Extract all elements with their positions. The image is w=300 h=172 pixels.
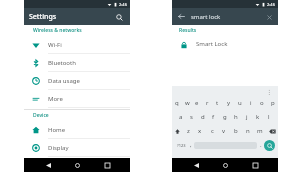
staticText: Device xyxy=(33,112,49,119)
button[interactable]: Home xyxy=(219,159,231,171)
button[interactable]: r xyxy=(202,96,212,110)
button[interactable]: Recents xyxy=(101,159,113,171)
button[interactable]: Wi-Fi xyxy=(24,36,130,54)
button[interactable]: l xyxy=(263,110,274,124)
button[interactable]: Search xyxy=(264,140,275,151)
button[interactable]: Home xyxy=(24,121,130,139)
staticText: Bluetooth xyxy=(48,59,76,67)
button[interactable]: q xyxy=(172,96,182,110)
button[interactable]: Back xyxy=(42,159,54,171)
staticText: l xyxy=(268,113,270,121)
staticText: ?123 xyxy=(177,143,186,148)
button[interactable]: y xyxy=(223,96,234,110)
staticText: ⋮ xyxy=(266,88,272,95)
staticText: p xyxy=(271,99,275,107)
staticText: x xyxy=(198,127,202,135)
button[interactable]: n xyxy=(242,124,254,138)
staticText: g xyxy=(223,113,227,121)
button[interactable]: Smart Lock xyxy=(172,36,278,52)
staticText: c xyxy=(211,127,214,135)
button[interactable]: x xyxy=(194,124,206,138)
staticText: 2:46 xyxy=(119,2,127,7)
staticText: Settings xyxy=(29,12,57,22)
button[interactable]: s xyxy=(186,110,197,124)
staticText: smart lock xyxy=(191,13,221,21)
button[interactable]: h xyxy=(230,110,241,124)
button[interactable]: e xyxy=(192,96,202,110)
button[interactable]: u xyxy=(234,96,245,110)
button[interactable]: f xyxy=(208,110,219,124)
button[interactable]: More xyxy=(24,90,130,108)
button[interactable]: Backspace xyxy=(266,124,278,138)
button[interactable]: t xyxy=(212,96,223,110)
button[interactable]: b xyxy=(230,124,242,138)
staticText: Data usage xyxy=(48,77,80,85)
staticText: o xyxy=(260,99,264,107)
button[interactable]: v xyxy=(218,124,230,138)
button[interactable]: . xyxy=(257,138,264,152)
staticText: Home xyxy=(48,126,66,134)
staticText: Wireless & networks xyxy=(33,27,82,34)
button[interactable]: Back xyxy=(190,159,202,171)
button[interactable]: w xyxy=(182,96,192,110)
button[interactable]: Back xyxy=(176,11,187,22)
button[interactable]: , xyxy=(187,138,194,152)
button[interactable]: i xyxy=(245,96,256,110)
staticText: j xyxy=(246,113,248,121)
button[interactable]: Shift xyxy=(172,124,183,138)
staticText: t xyxy=(216,99,219,107)
staticText: Wi-Fi xyxy=(48,41,62,49)
staticText: d xyxy=(201,113,205,121)
button[interactable]: Recents xyxy=(249,159,261,171)
button[interactable]: z xyxy=(183,124,194,138)
staticText: , xyxy=(190,141,192,149)
staticText: k xyxy=(256,113,260,121)
button[interactable]: Search xyxy=(113,11,125,23)
button[interactable]: ?123 xyxy=(175,138,187,152)
staticText: q xyxy=(175,99,179,107)
staticText: v xyxy=(222,127,226,135)
staticText: b xyxy=(234,127,238,135)
staticText: n xyxy=(246,127,250,135)
staticText: u xyxy=(238,99,242,107)
button[interactable]: Bluetooth xyxy=(24,54,130,72)
button[interactable]: Display xyxy=(24,139,130,157)
button[interactable]: o xyxy=(256,96,267,110)
staticText: f xyxy=(212,113,215,121)
button[interactable]: Settings xyxy=(24,8,130,25)
button[interactable]: j xyxy=(241,110,252,124)
button[interactable]: p xyxy=(267,96,278,110)
button[interactable]: d xyxy=(197,110,208,124)
staticText: e xyxy=(195,99,199,107)
button[interactable]: Back xyxy=(172,8,278,25)
staticText: 2:46 xyxy=(267,2,275,7)
staticText: Results xyxy=(179,27,197,34)
staticText: s xyxy=(190,113,193,121)
staticText: a xyxy=(179,113,183,121)
staticText: r xyxy=(206,99,209,107)
button[interactable]: c xyxy=(206,124,218,138)
staticText: w xyxy=(185,99,190,107)
button[interactable]: k xyxy=(252,110,263,124)
button[interactable]: Home xyxy=(71,159,83,171)
staticText: m xyxy=(257,127,263,135)
staticText: z xyxy=(187,127,190,135)
staticText: . xyxy=(260,141,262,149)
button[interactable]: a xyxy=(176,110,186,124)
staticText: More xyxy=(48,95,63,103)
button[interactable]: Data usage xyxy=(24,72,130,90)
staticText: y xyxy=(227,99,231,107)
staticText: Smart Lock xyxy=(196,40,228,48)
staticText: i xyxy=(250,99,252,107)
staticText: h xyxy=(234,113,238,121)
button[interactable]: m xyxy=(254,124,266,138)
button[interactable]: Clear xyxy=(264,12,274,22)
button[interactable]: g xyxy=(219,110,230,124)
staticText: Display xyxy=(48,144,69,152)
